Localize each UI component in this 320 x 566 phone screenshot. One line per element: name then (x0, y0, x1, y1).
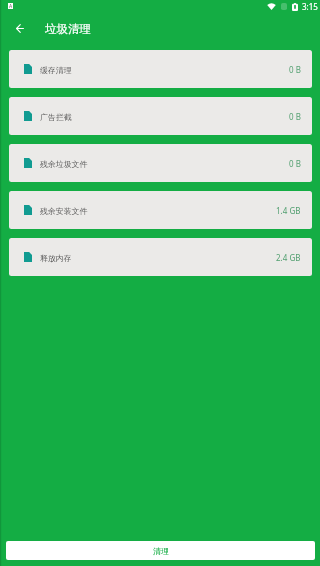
staticText: A (9, 3, 13, 9)
staticText: 1.4 GB (276, 205, 301, 216)
staticText: 缓存清理 (40, 65, 72, 75)
staticText: 广告拦截 (40, 112, 72, 122)
button[interactable]: 广告拦截 (9, 97, 312, 135)
staticText: 垃圾清理 (45, 22, 91, 36)
staticText: 0 B (289, 111, 301, 122)
staticText: 清理 (153, 546, 169, 556)
staticText: 3:15 (302, 1, 318, 12)
button[interactable]: 残余安装文件 (9, 191, 312, 229)
staticText: 释放内存 (40, 253, 72, 263)
staticText: 2.4 GB (276, 252, 301, 263)
staticText: 0 B (289, 158, 301, 169)
staticText: 残余垃圾文件 (40, 159, 88, 169)
staticText: 残余安装文件 (40, 206, 88, 216)
button[interactable]: 释放内存 (9, 238, 312, 276)
button[interactable]: 缓存清理 (9, 50, 312, 88)
button[interactable]: 残余垃圾文件 (9, 144, 312, 182)
button[interactable]: 清理 (6, 541, 315, 560)
staticText: 0 B (289, 64, 301, 75)
button[interactable]: Back (8, 16, 32, 40)
